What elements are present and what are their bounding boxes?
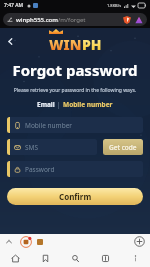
staticText: Password: [25, 165, 55, 174]
button[interactable]: Password: [7, 161, 143, 177]
staticText: Confirm: [59, 191, 92, 202]
button[interactable]: Expand: [5, 238, 13, 246]
staticText: Mobile number: [63, 100, 113, 109]
button[interactable]: Email: [35, 99, 57, 110]
button[interactable]: Menu: [135, 16, 143, 24]
button[interactable]: Tabs: [90, 249, 120, 267]
staticText: PH: [82, 35, 102, 54]
button[interactable]: Mobile number: [61, 99, 115, 110]
staticText: WIN: [49, 35, 82, 54]
button[interactable]: Brave Shields: [123, 16, 131, 24]
button[interactable]: Confirm: [7, 188, 143, 205]
button[interactable]: Page info: [3, 13, 147, 26]
staticText: 1.8KB/s: [107, 3, 122, 8]
button[interactable]: Bookmarks: [30, 249, 60, 267]
staticText: /m/forget: [58, 16, 86, 24]
button[interactable]: Get code: [103, 139, 143, 155]
staticText: 7:47 AM: [4, 2, 24, 9]
other: Page info: [7, 17, 13, 23]
staticText: winph555.com: [16, 16, 58, 24]
staticText: Email: [37, 100, 55, 109]
button[interactable]: Wallet: [37, 239, 43, 245]
button[interactable]: Home: [0, 249, 30, 267]
staticText: SMS: [25, 143, 39, 152]
staticText: |: [57, 100, 61, 109]
button[interactable]: SMS: [7, 139, 97, 155]
button[interactable]: Mobile number: [7, 117, 143, 133]
button[interactable]: More: [120, 249, 150, 267]
staticText: Get code: [109, 143, 137, 152]
button[interactable]: Back: [0, 31, 20, 51]
staticText: Please retrieve your password in the fol…: [0, 87, 150, 94]
button[interactable]: New tab: [134, 236, 145, 247]
button[interactable]: Search: [60, 249, 90, 267]
staticText: Mobile number: [25, 121, 72, 130]
button[interactable]: Downloads: [20, 236, 32, 248]
staticText: Forgot password: [0, 60, 150, 80]
